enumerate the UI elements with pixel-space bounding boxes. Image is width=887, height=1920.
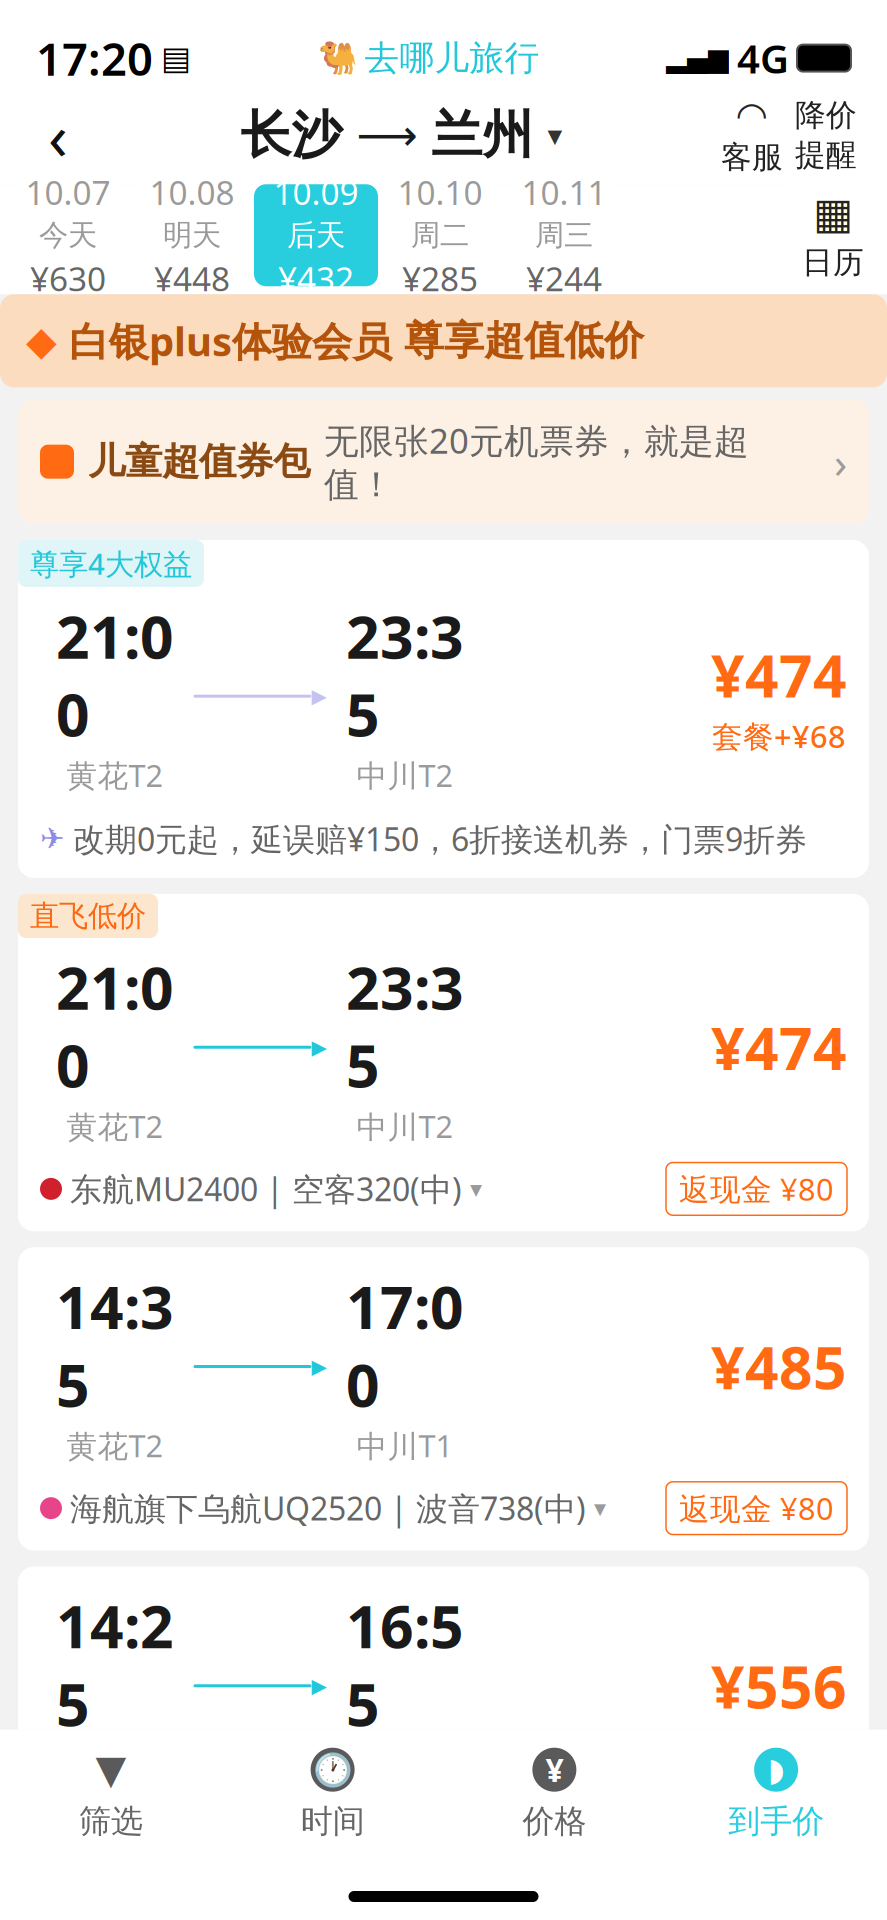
- staticText: ¥244: [526, 256, 602, 301]
- staticText: 21:00: [56, 597, 174, 753]
- button[interactable]: 尊享4大权益: [18, 540, 869, 878]
- staticText: 🕐: [313, 1751, 353, 1788]
- staticText: ◆: [26, 318, 57, 363]
- staticText: 东航MU2400 | 空客320(中): [70, 1168, 462, 1210]
- staticText: 尊享4大权益: [30, 544, 192, 583]
- staticText: 后天: [287, 217, 345, 253]
- button[interactable]: 14:35: [18, 1247, 869, 1551]
- button[interactable]: 10.11: [502, 184, 626, 286]
- staticText: ⟶: [356, 111, 417, 159]
- button[interactable]: 儿童超值券包: [18, 399, 869, 524]
- button[interactable]: ◆: [0, 294, 887, 387]
- staticText: 4G: [737, 31, 789, 85]
- staticText: ▼: [95, 1747, 126, 1792]
- staticText: 筛选: [79, 1802, 143, 1841]
- staticText: 中川T1: [356, 1425, 453, 1466]
- button[interactable]: 10.10: [378, 184, 502, 286]
- staticText: 10.07: [25, 170, 110, 214]
- staticText: 白银plus体验会员: [69, 314, 392, 367]
- button[interactable]: 14:20: [18, 1886, 869, 1920]
- staticText: ✈: [40, 822, 65, 855]
- staticText: 海航旗下乌航UQ2520 | 波音738(中): [70, 1487, 586, 1529]
- staticText: 长沙: [240, 104, 342, 166]
- staticText: ‹: [48, 93, 68, 178]
- staticText: 10.09: [273, 170, 358, 214]
- staticText: ◗: [768, 1751, 785, 1788]
- staticText: 17:00: [346, 1267, 464, 1423]
- button[interactable]: ¥: [443, 1748, 665, 1841]
- button[interactable]: 返回: [26, 103, 90, 167]
- staticText: 价格: [522, 1802, 586, 1841]
- button[interactable]: 直飞低价: [18, 894, 869, 1231]
- staticText: 兰州: [431, 104, 533, 166]
- staticText: ¥285: [402, 256, 478, 301]
- staticText: 23:35: [346, 597, 464, 753]
- staticText: ◠: [735, 94, 768, 137]
- staticText: 黄花T2: [66, 1106, 163, 1146]
- button[interactable]: 长沙: [240, 104, 562, 166]
- staticText: ¥448: [154, 256, 230, 301]
- staticText: 提醒: [795, 136, 857, 174]
- staticText: ▾: [594, 1494, 606, 1522]
- staticText: 返现金 ¥80: [679, 1168, 834, 1209]
- staticText: ›: [834, 433, 847, 490]
- staticText: 10.11: [521, 170, 606, 214]
- staticText: ▶: [311, 1036, 326, 1059]
- staticText: ▶: [311, 1674, 326, 1697]
- staticText: ▶: [311, 685, 326, 707]
- staticText: 套餐+¥68: [712, 716, 846, 756]
- button[interactable]: 日历: [785, 184, 881, 286]
- staticText: ¥485: [711, 1328, 847, 1405]
- staticText: 到手价: [728, 1802, 824, 1841]
- staticText: ▾: [470, 1175, 482, 1202]
- button[interactable]: 10.08: [130, 184, 254, 286]
- staticText: 中川T2: [356, 755, 453, 795]
- button[interactable]: ▼: [0, 1748, 222, 1841]
- staticText: 改期0元起，延误赔¥150，6折接送机券，门票9折券: [73, 817, 807, 860]
- staticText: 儿童超值券包: [88, 439, 310, 485]
- staticText: 尊享超值低价: [404, 316, 644, 365]
- staticText: 黄花T2: [66, 755, 163, 795]
- staticText: ▂▄▆: [666, 43, 729, 73]
- staticText: ▶: [311, 1355, 326, 1378]
- staticText: 🐫: [317, 40, 357, 76]
- button[interactable]: 🕐: [222, 1748, 444, 1841]
- staticText: ¥: [545, 1748, 563, 1791]
- staticText: 17:20: [36, 28, 153, 88]
- button[interactable]: 10.07: [6, 184, 130, 286]
- staticText: 21:00: [56, 948, 174, 1104]
- staticText: 客服: [721, 139, 783, 176]
- staticText: 中川T2: [356, 1106, 453, 1146]
- button[interactable]: 10.09: [254, 184, 378, 286]
- staticText: 日历: [802, 244, 864, 281]
- staticText: ▾: [547, 119, 562, 152]
- staticText: ¥474: [711, 1008, 847, 1086]
- staticText: 14:35: [56, 1267, 174, 1423]
- staticText: 16:55: [346, 1586, 464, 1742]
- staticText: 直飞低价: [30, 898, 146, 934]
- staticText: 周二: [411, 217, 469, 253]
- staticText: 黄花T2: [66, 1425, 163, 1466]
- staticText: 返现金 ¥80: [679, 1807, 834, 1848]
- staticText: 降价: [795, 97, 857, 134]
- staticText: ¥432: [278, 256, 354, 301]
- staticText: 23:35: [346, 948, 464, 1104]
- button[interactable]: 降价: [791, 97, 861, 174]
- staticText: 今天: [39, 217, 97, 253]
- staticText: ▦: [813, 189, 853, 238]
- staticText: ¥630: [30, 256, 106, 301]
- button[interactable]: ◗: [665, 1748, 887, 1841]
- staticText: 10.10: [397, 170, 482, 214]
- staticText: ▤: [161, 40, 191, 76]
- button[interactable]: 14:25: [18, 1566, 869, 1870]
- staticText: ¥556: [711, 1647, 847, 1725]
- staticText: 14:25: [56, 1586, 174, 1742]
- staticText: 时间: [301, 1802, 365, 1841]
- staticText: 无限张20元机票券，就是超值！: [324, 417, 749, 506]
- staticText: ¥474: [711, 636, 847, 714]
- button[interactable]: ◠: [713, 94, 791, 176]
